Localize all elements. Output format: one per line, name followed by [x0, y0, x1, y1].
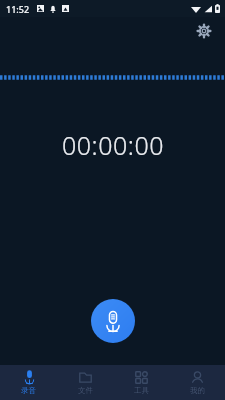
button[interactable]: Settings — [193, 20, 215, 42]
button[interactable]: Start recording — [91, 299, 135, 343]
staticText: 11:52 — [6, 3, 30, 15]
button[interactable]: 录音 — [0, 365, 57, 400]
button[interactable]: 我的 — [169, 365, 225, 400]
staticText: 文件 — [78, 386, 93, 395]
staticText: 录音 — [21, 386, 36, 395]
button[interactable]: 工具 — [113, 365, 169, 400]
staticText: 工具 — [134, 386, 149, 395]
staticText: 00:00:00 — [62, 128, 164, 162]
staticText: 我的 — [190, 386, 205, 395]
button[interactable]: 文件 — [57, 365, 113, 400]
